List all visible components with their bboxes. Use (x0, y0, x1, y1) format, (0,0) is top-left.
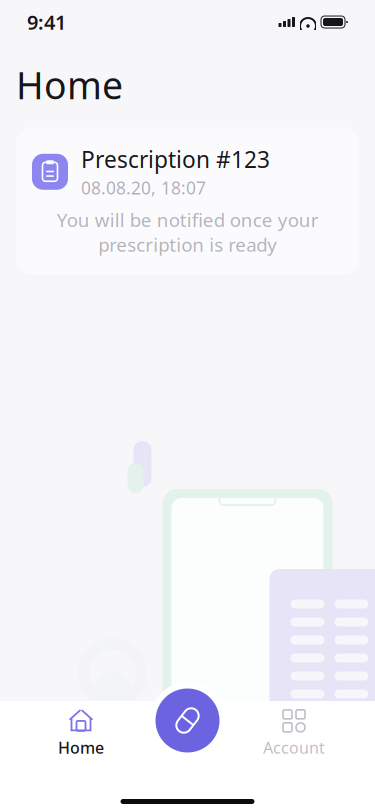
staticText: Prescription #123 (81, 144, 270, 174)
staticText: 08.08.20, 18:07 (81, 176, 206, 199)
staticText: Home (58, 737, 104, 758)
button[interactable]: Home (26, 705, 136, 761)
button[interactable]: Add prescription (149, 682, 225, 758)
button[interactable]: Prescription #123 (16, 128, 359, 275)
button[interactable]: Account (239, 705, 349, 761)
staticText: You will be notified once your prescript… (56, 207, 318, 257)
staticText: Account (263, 737, 325, 758)
staticText: Home (16, 60, 123, 110)
staticText: 9:41 (27, 9, 66, 35)
